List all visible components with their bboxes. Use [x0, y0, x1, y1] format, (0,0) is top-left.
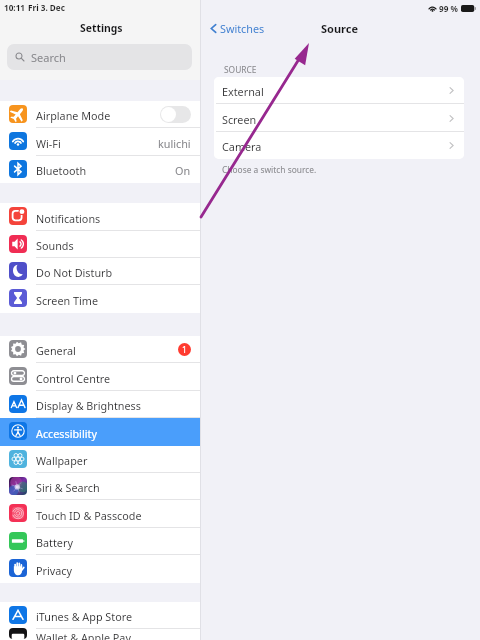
button[interactable]: General [0, 336, 200, 363]
staticText: Fri 3. Dec [28, 2, 65, 13]
button[interactable]: Wi-Fi [0, 128, 200, 156]
staticText: Accessibility [36, 426, 97, 441]
staticText: Battery [36, 535, 73, 550]
button[interactable]: Search [7, 44, 192, 70]
button[interactable]: Sounds [0, 231, 200, 258]
staticText: kulichi [158, 136, 191, 151]
staticText: Screen Time [36, 293, 98, 308]
button[interactable]: Notifications [0, 203, 200, 231]
button[interactable]: Siri & Search [0, 473, 200, 500]
staticText: 1 [182, 344, 187, 356]
staticText: Touch ID & Passcode [36, 508, 142, 523]
button[interactable]: Battery [0, 528, 200, 555]
staticText: Wi-Fi [36, 136, 61, 151]
button[interactable]: Camera [214, 132, 464, 159]
staticText: Siri & Search [36, 480, 100, 495]
button[interactable]: Display & Brightness [0, 391, 200, 418]
button[interactable]: Accessibility [0, 418, 200, 446]
button[interactable]: Screen [214, 104, 464, 132]
button[interactable]: Bluetooth [0, 156, 200, 183]
button[interactable]: Airplane Mode toggle [160, 106, 191, 123]
staticText: Choose a switch source. [222, 164, 317, 175]
staticText: Search [31, 50, 66, 65]
button[interactable]: Wallet & Apple Pay [0, 629, 200, 640]
button[interactable]: Touch ID & Passcode [0, 500, 200, 528]
button[interactable]: External [214, 77, 464, 104]
staticText: Screen [222, 112, 257, 127]
staticText: Notifications [36, 211, 101, 226]
staticText: Settings [80, 21, 123, 35]
staticText: General [36, 343, 76, 358]
button[interactable]: Screen Time [0, 285, 200, 313]
button[interactable]: Privacy [0, 555, 200, 583]
button[interactable]: Control Centre [0, 363, 200, 391]
staticText: iTunes & App Store [36, 609, 133, 624]
staticText: Sounds [36, 238, 74, 253]
button[interactable]: Do Not Disturb [0, 258, 200, 285]
button[interactable]: Wallpaper [0, 446, 200, 473]
staticText: Privacy [36, 563, 73, 578]
staticText: SOURCE [224, 64, 257, 75]
staticText: Do Not Disturb [36, 265, 113, 280]
staticText: Bluetooth [36, 163, 87, 178]
staticText: Camera [222, 139, 262, 154]
staticText: Source [321, 21, 359, 36]
staticText: Display & Brightness [36, 398, 141, 413]
staticText: 10:11 [4, 2, 26, 13]
staticText: On [175, 163, 191, 178]
button[interactable]: Switches [208, 21, 265, 36]
staticText: Switches [220, 21, 265, 36]
staticText: Wallpaper [36, 453, 88, 468]
staticText: Control Centre [36, 371, 111, 386]
staticText: Airplane Mode [36, 108, 111, 123]
button[interactable]: iTunes & App Store [0, 602, 200, 629]
staticText: 99 % [439, 3, 458, 14]
staticText: Wallet & Apple Pay [36, 630, 131, 640]
staticText: External [222, 84, 264, 99]
button[interactable]: Airplane Mode [0, 101, 200, 128]
